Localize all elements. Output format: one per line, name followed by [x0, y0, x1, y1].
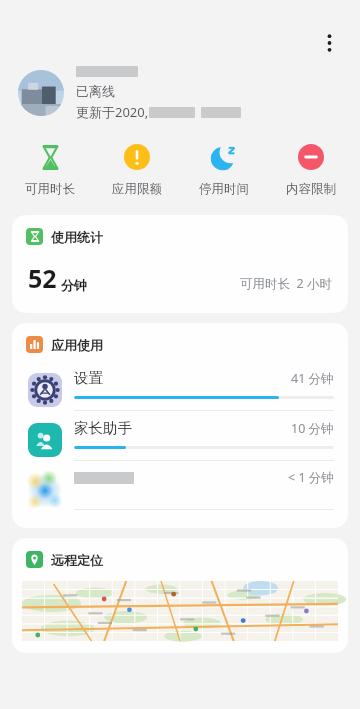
staticText: 更新于2020, [76, 103, 149, 121]
staticText: 10 分钟 [291, 420, 334, 437]
button[interactable]: 应用限额 [93, 140, 180, 199]
staticText: 远程定位 [51, 552, 103, 568]
staticText: 52 [28, 261, 57, 295]
button[interactable]: < 1 分钟 [12, 465, 348, 514]
button[interactable]: 使用统计 [12, 215, 348, 313]
staticText: 设置 [74, 369, 103, 387]
staticText: 应用限额 [112, 181, 162, 197]
staticText: 内容限制 [286, 181, 336, 197]
button[interactable]: 家长助手 [12, 415, 348, 465]
button[interactable]: Profile photo [18, 70, 64, 116]
staticText: < 1 分钟 [288, 469, 334, 486]
button[interactable]: 设置 [12, 365, 348, 415]
staticText: 应用使用 [51, 337, 103, 353]
staticText: 41 分钟 [291, 370, 334, 387]
staticText: 使用统计 [51, 229, 103, 245]
staticText: 可用时长 2 小时 [240, 275, 332, 292]
staticText: 停用时间 [199, 181, 249, 197]
staticText: 已离线 [76, 83, 115, 99]
button[interactable]: 停用时间 [180, 140, 267, 199]
button[interactable]: More options [314, 28, 344, 58]
staticText: 可用时长 [25, 181, 75, 197]
button[interactable]: 可用时长 [6, 140, 93, 199]
staticText: 家长助手 [74, 419, 132, 437]
button[interactable]: 内容限制 [267, 140, 354, 199]
staticText: 分钟 [61, 277, 87, 293]
